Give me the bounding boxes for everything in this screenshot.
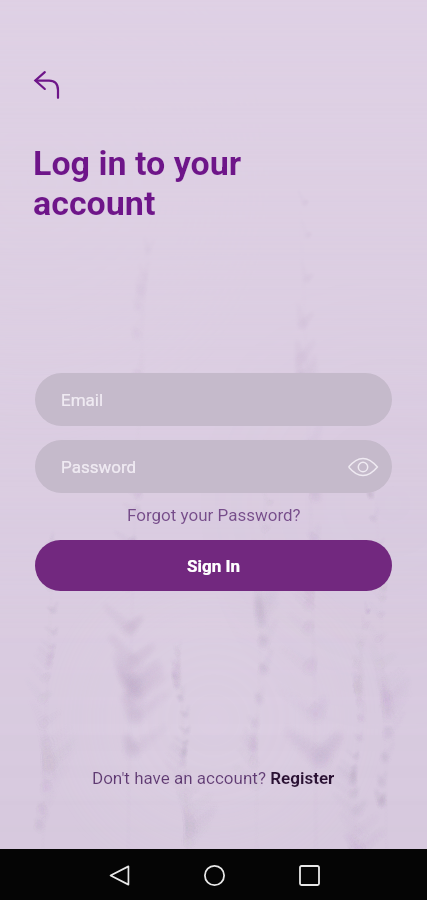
button[interactable]: Forgot your Password?: [119, 502, 309, 528]
button[interactable]: Don't have an account? Register: [84, 764, 343, 792]
button[interactable]: Show password: [341, 445, 385, 489]
button[interactable]: Recents: [285, 851, 333, 899]
staticText: Log in to your account: [33, 143, 242, 223]
staticText: Don't have an account? Register: [92, 768, 335, 788]
button[interactable]: Email: [35, 373, 392, 426]
button[interactable]: Home: [190, 851, 238, 899]
button[interactable]: Password: [35, 440, 392, 493]
button[interactable]: Back: [95, 851, 143, 899]
button[interactable]: Sign In: [35, 540, 392, 591]
staticText: Password: [61, 457, 137, 477]
staticText: Sign In: [187, 556, 240, 576]
button[interactable]: Back: [27, 62, 71, 106]
staticText: Forgot your Password?: [127, 505, 301, 525]
staticText: Email: [61, 390, 104, 410]
